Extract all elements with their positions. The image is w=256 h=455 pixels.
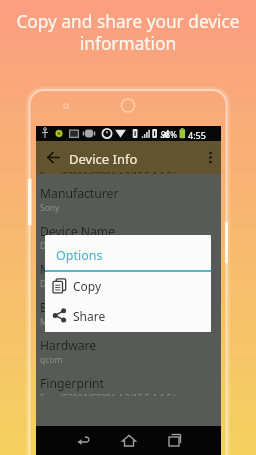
staticText: 98% bbox=[161, 129, 177, 140]
button[interactable]: Home bbox=[118, 430, 140, 452]
button[interactable]: Device Name bbox=[36, 220, 221, 258]
button[interactable]: Hardware bbox=[36, 334, 221, 372]
button[interactable]: Recents bbox=[163, 430, 185, 452]
staticText: Device Name bbox=[40, 223, 116, 240]
button[interactable]: Back bbox=[73, 430, 95, 452]
button[interactable]: Back bbox=[45, 149, 62, 166]
button[interactable]: Manufacturer bbox=[36, 182, 221, 220]
staticText: 4:55 bbox=[188, 129, 206, 141]
staticText: Manufacturer bbox=[40, 185, 119, 202]
staticText: Device Info bbox=[69, 150, 138, 168]
button[interactable]: Board bbox=[36, 296, 221, 334]
staticText: Share bbox=[73, 308, 106, 324]
staticText: Sony bbox=[40, 202, 60, 214]
staticText: Fingerprint bbox=[40, 375, 105, 392]
staticText: D2303 bbox=[40, 278, 66, 290]
staticText: qcom bbox=[40, 354, 63, 366]
staticText: Options bbox=[56, 247, 103, 264]
staticText: Sony/C2004/C2004:4.3/15.5.A.1.5/ bbox=[40, 392, 175, 396]
staticText: Hardware bbox=[40, 337, 97, 354]
button[interactable]: Fingerprint bbox=[36, 372, 221, 396]
staticText: Model bbox=[40, 261, 76, 278]
staticText: Copy and share your device information bbox=[10, 10, 246, 55]
button[interactable]: Share bbox=[45, 300, 211, 331]
button[interactable]: Copy bbox=[45, 270, 211, 301]
staticText: Board bbox=[40, 299, 75, 316]
staticText: MSM8926 bbox=[40, 316, 80, 328]
staticText: D2303 bbox=[40, 240, 66, 252]
button[interactable]: More options bbox=[202, 149, 219, 166]
staticText: Copy bbox=[73, 278, 102, 294]
button[interactable]: Model bbox=[36, 258, 221, 296]
staticText: Sony/C2004/C2004:4.3/15.5.A.1.5/ bbox=[40, 170, 175, 174]
